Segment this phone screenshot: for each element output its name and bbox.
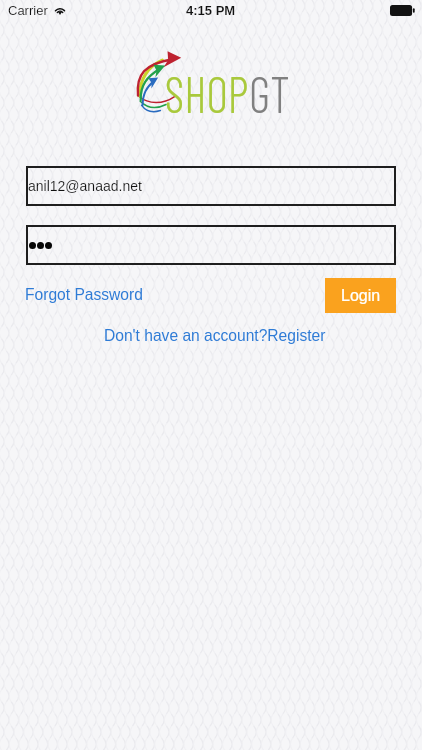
button[interactable]: Don't have an account?Register (104, 327, 326, 344)
button[interactable] (26, 225, 396, 265)
staticText: Login (341, 287, 381, 305)
staticText: Carrier (8, 3, 48, 18)
button[interactable]: anil12@anaad.net (26, 166, 396, 206)
button[interactable]: Forgot Password (25, 286, 143, 303)
other: Battery full (390, 5, 414, 16)
staticText: anil12@anaad.net (28, 178, 142, 194)
staticText: Forgot Password (25, 286, 143, 303)
staticText: 4:15 PM (186, 3, 236, 18)
button[interactable]: ShopGT logo (135, 52, 287, 116)
other: Wi-Fi signal (53, 4, 67, 18)
button[interactable]: Login (325, 278, 396, 313)
